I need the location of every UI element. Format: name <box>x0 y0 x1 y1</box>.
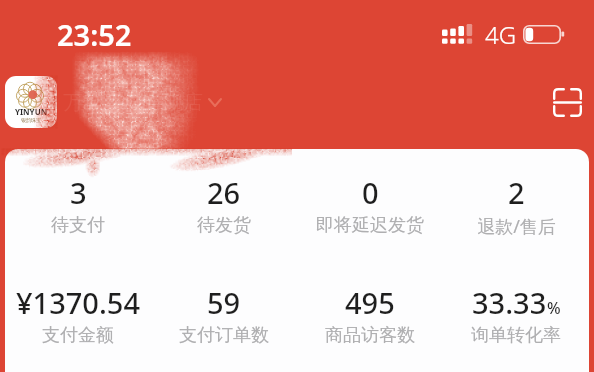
staticText: 26 <box>207 173 241 212</box>
staticText: 59 <box>207 283 241 322</box>
staticText: 支付金额 <box>42 324 114 347</box>
button[interactable]: Shop avatar <box>5 76 57 128</box>
staticText: ¥1370.54 <box>16 283 141 322</box>
button[interactable]: 0 <box>297 173 443 237</box>
staticText: 询单转化率 <box>471 324 561 347</box>
staticText: 2 <box>508 173 525 212</box>
button[interactable]: 2 <box>443 173 589 239</box>
staticText: YINYUN <box>15 106 48 117</box>
staticText: 3 <box>70 173 87 212</box>
button[interactable]: 万物商城旗舰店 <box>63 90 221 115</box>
staticText: % <box>547 297 561 319</box>
staticText: 支付订单数 <box>179 324 269 347</box>
button[interactable]: 3 <box>5 173 151 237</box>
staticText: 4G <box>485 18 517 51</box>
staticText: 商品访客数 <box>325 324 415 347</box>
staticText: 0 <box>362 173 379 212</box>
staticText: 33.33 <box>472 283 547 322</box>
button[interactable]: Scan <box>546 81 588 123</box>
staticText: 万物商城旗舰店 <box>63 90 203 115</box>
staticText: 待发货 <box>197 214 251 237</box>
staticText: 银韵珠宝 <box>21 117 41 123</box>
staticText: 即将延迟发货 <box>316 214 424 237</box>
button[interactable]: 495 <box>297 283 443 347</box>
button[interactable]: 26 <box>151 173 297 237</box>
staticText: 退款/售后 <box>477 214 556 239</box>
staticText: 23:52 <box>57 15 132 54</box>
staticText: 495 <box>345 283 395 322</box>
button[interactable]: ¥1370.54 <box>5 283 151 347</box>
button[interactable]: 33.33 <box>443 283 589 347</box>
staticText: 待支付 <box>51 214 105 237</box>
button[interactable]: 59 <box>151 283 297 347</box>
